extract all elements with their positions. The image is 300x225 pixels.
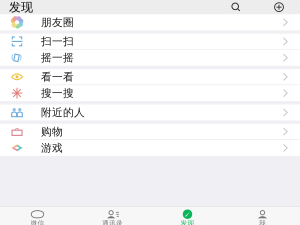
staticText: 发现 xyxy=(180,219,194,225)
staticText: 摇一摇 xyxy=(41,51,74,64)
staticText: 我 xyxy=(259,219,266,225)
button[interactable]: Add xyxy=(272,0,286,14)
staticText: 游戏 xyxy=(41,141,63,154)
staticText: 扫一扫 xyxy=(41,35,74,48)
staticText: 搜一搜 xyxy=(41,87,74,100)
button[interactable]: 扫一扫 xyxy=(0,34,300,50)
button[interactable]: 通讯录 xyxy=(75,206,150,225)
button[interactable]: 摇一摇 xyxy=(0,50,300,66)
button[interactable]: Search xyxy=(229,0,243,14)
button[interactable]: 购物 xyxy=(0,124,300,140)
staticText: 发现 xyxy=(9,0,33,14)
staticText: 朋友圈 xyxy=(41,16,74,29)
staticText: 微信 xyxy=(30,219,44,225)
staticText: 通讯录 xyxy=(102,219,123,225)
button[interactable]: 附近的人 xyxy=(0,104,300,121)
button[interactable]: 搜一搜 xyxy=(0,85,300,101)
button[interactable]: 游戏 xyxy=(0,140,300,156)
button[interactable]: 发现 xyxy=(150,206,225,225)
button[interactable]: 我 xyxy=(225,206,300,225)
button[interactable]: 微信 xyxy=(0,206,75,225)
staticText: 看一看 xyxy=(41,70,74,83)
staticText: 购物 xyxy=(41,125,63,138)
staticText: 附近的人 xyxy=(41,106,85,119)
button[interactable]: 朋友圈 xyxy=(0,14,300,30)
button[interactable]: 看一看 xyxy=(0,69,300,85)
